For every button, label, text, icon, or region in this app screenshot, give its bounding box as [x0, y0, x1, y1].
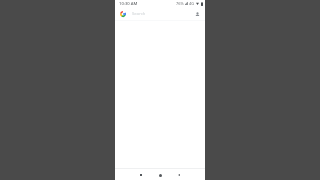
- button[interactable]: Home: [155, 170, 165, 180]
- button[interactable]: Recents: [136, 170, 146, 180]
- staticText: 4G: [189, 1, 195, 6]
- button[interactable]: Back: [174, 170, 184, 180]
- staticText: 10:30 AM: [119, 1, 138, 7]
- staticText: Search: [132, 11, 146, 17]
- button[interactable]: Google: [119, 10, 127, 18]
- staticText: 76%: [176, 1, 184, 6]
- button[interactable]: Account: [193, 10, 201, 18]
